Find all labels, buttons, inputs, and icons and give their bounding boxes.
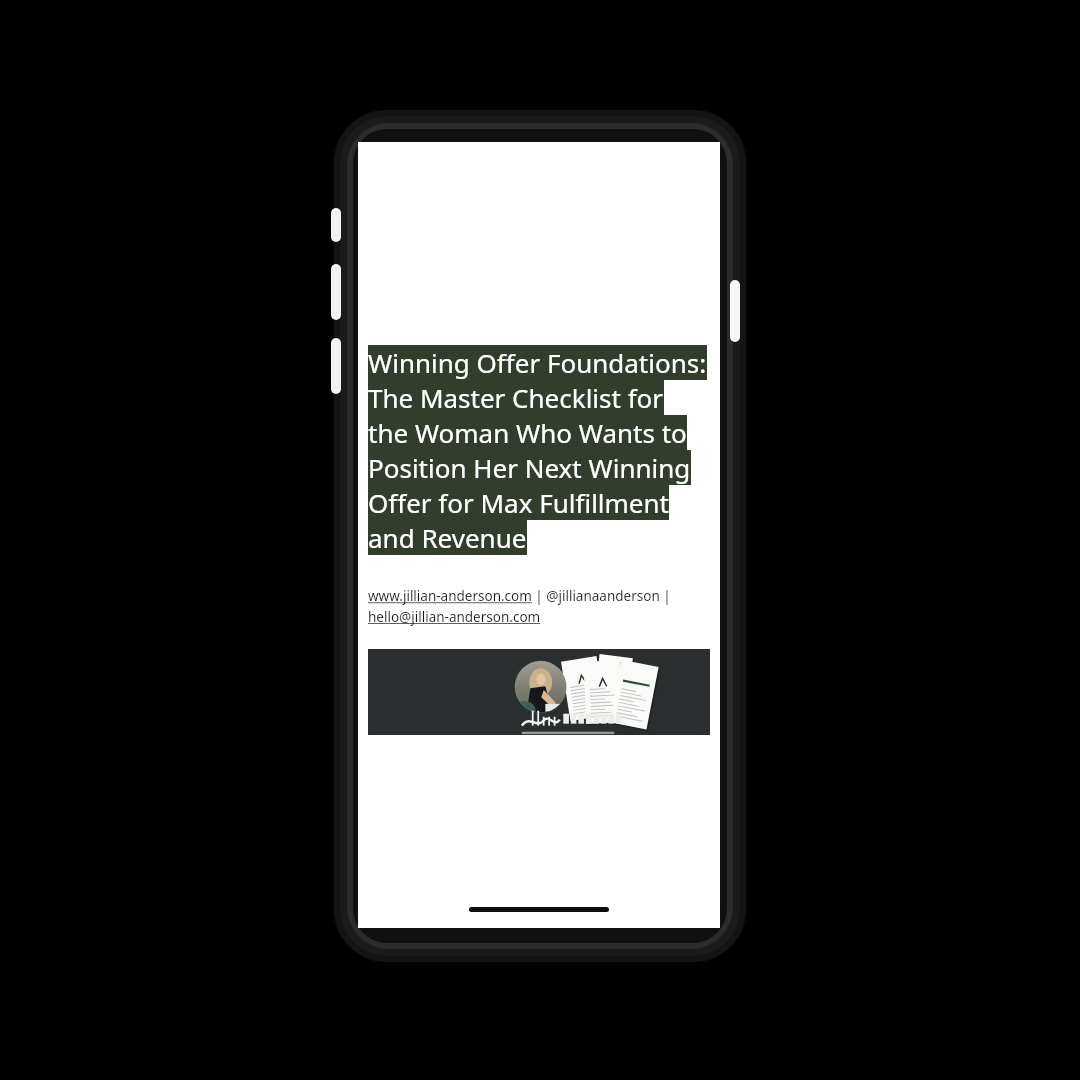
staticText: and Revenue — [368, 520, 527, 555]
staticText: Position Her Next Winning — [368, 450, 691, 485]
button[interactable]: www.jillian-anderson.com | @jillianaande… — [368, 587, 710, 626]
button[interactable]: Power — [730, 280, 740, 342]
button[interactable]: Volume up — [331, 264, 341, 320]
button[interactable]: Volume down — [331, 338, 341, 394]
staticText: the Woman Who Wants to — [368, 415, 687, 450]
button[interactable]: Side button — [331, 208, 341, 242]
button[interactable]: Jillian Anderson branding banner — [368, 649, 710, 735]
staticText: Winning Offer Foundations: — [368, 345, 707, 380]
staticText: www.jillian-anderson.com | @jillianaande… — [368, 587, 710, 626]
button[interactable]: Home — [469, 907, 609, 912]
staticText: Offer for Max Fulfillment — [368, 485, 669, 520]
staticText: The Master Checklist for — [368, 380, 664, 415]
